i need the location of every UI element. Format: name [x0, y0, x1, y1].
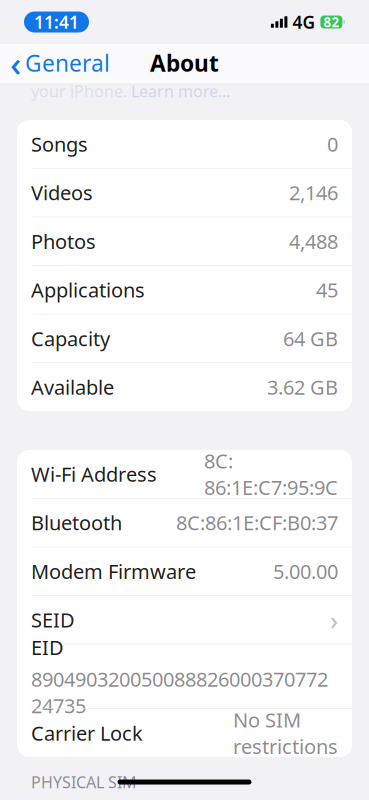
staticText: 45 — [316, 276, 338, 303]
staticText: Bluetooth — [31, 509, 122, 536]
button[interactable]: ‹ — [0, 44, 118, 82]
staticText: your iPhone. — [31, 80, 131, 102]
button[interactable]: Videos — [17, 169, 352, 217]
staticText: Wi-Fi Address — [31, 461, 157, 487]
staticText: PHYSICAL SIM — [31, 771, 137, 793]
button[interactable]: Modem Firmware — [17, 547, 352, 595]
staticText: 4G — [292, 10, 315, 33]
staticText: About — [150, 48, 219, 78]
staticText: EID — [31, 634, 64, 661]
button[interactable]: EID — [17, 644, 352, 708]
button[interactable]: Available — [17, 363, 352, 411]
staticText: Applications — [31, 276, 145, 303]
staticText: 4,488 — [289, 228, 338, 254]
staticText: ‹ — [10, 40, 21, 86]
button[interactable]: Applications — [17, 266, 352, 314]
button[interactable]: Capacity — [17, 314, 352, 362]
button[interactable]: Wi-Fi Address — [17, 450, 352, 498]
staticText: Capacity — [31, 325, 110, 352]
staticText: Learn more... — [131, 80, 230, 102]
staticText: 89049032005008882600037077224735 — [31, 666, 328, 719]
button[interactable]: SEID — [17, 596, 352, 644]
staticText: 2,146 — [289, 179, 338, 206]
staticText: Songs — [31, 131, 88, 157]
staticText: 3.62 GB — [267, 374, 338, 400]
staticText: 64 GB — [283, 325, 338, 352]
button[interactable]: Carrier Lock — [17, 709, 352, 757]
button[interactable]: Photos — [17, 217, 352, 265]
staticText: 11:41 — [34, 10, 79, 33]
staticText: 8C:86:1E:C7:95:9C — [204, 447, 338, 500]
staticText: Modem Firmware — [31, 558, 196, 584]
staticText: › — [330, 603, 338, 637]
button[interactable]: Bluetooth — [17, 499, 352, 547]
staticText: Carrier Lock — [31, 720, 143, 746]
staticText: General — [25, 48, 110, 78]
staticText: 0 — [327, 131, 338, 157]
button[interactable]: Songs — [17, 120, 352, 168]
staticText: No SIM restrictions — [233, 706, 338, 759]
staticText: Photos — [31, 228, 96, 254]
staticText: 5.00.00 — [273, 558, 338, 584]
staticText: 8C:86:1E:CF:B0:37 — [176, 509, 338, 536]
staticText: SEID — [31, 606, 75, 633]
staticText: Available — [31, 374, 114, 400]
staticText: 82 — [323, 13, 339, 31]
staticText: Videos — [31, 179, 93, 206]
